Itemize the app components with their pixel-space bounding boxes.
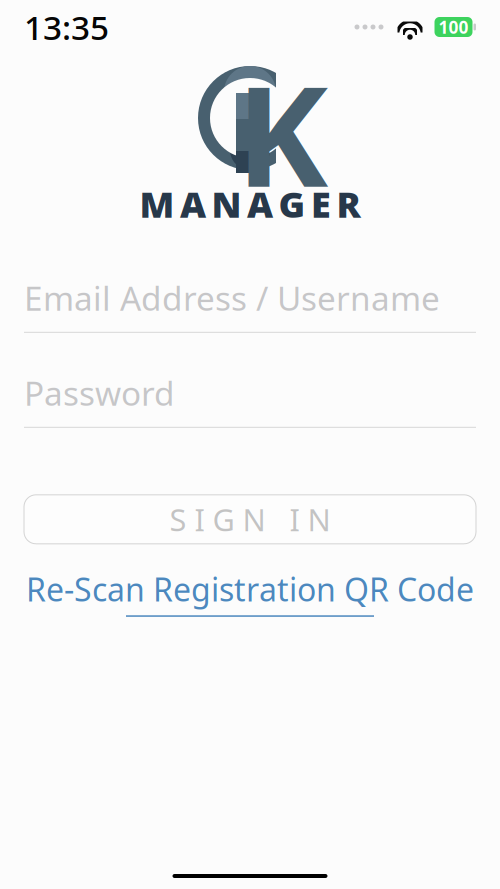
staticText: A bbox=[180, 180, 206, 228]
staticText: E bbox=[311, 180, 331, 228]
staticText: N bbox=[211, 180, 241, 228]
staticText: Re-Scan Registration QR Code bbox=[26, 568, 474, 610]
staticText: A bbox=[247, 180, 273, 228]
staticText: 13:35 bbox=[24, 5, 109, 49]
staticText: G bbox=[278, 180, 305, 228]
button[interactable]: Re-Scan Registration QR Code bbox=[20, 564, 480, 621]
staticText: S I G N I N bbox=[169, 499, 330, 540]
staticText: R bbox=[336, 180, 360, 228]
button[interactable]: S I G N I N bbox=[24, 495, 476, 544]
staticText: M bbox=[139, 180, 174, 228]
staticText: Password bbox=[24, 371, 175, 415]
staticText: Email Address / Username bbox=[24, 276, 440, 320]
staticText: 100 bbox=[438, 15, 468, 38]
staticText: K bbox=[236, 41, 328, 225]
